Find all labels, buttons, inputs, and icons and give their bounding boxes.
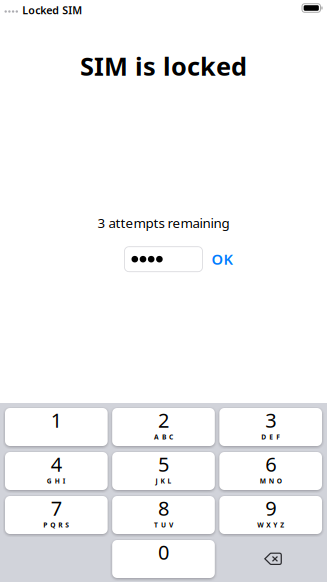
staticText: W X Y Z (257, 521, 284, 529)
button[interactable]: 8 (112, 496, 215, 534)
button[interactable]: 9 (219, 496, 322, 534)
staticText: Locked SIM (22, 3, 82, 17)
staticText: 2 (158, 407, 169, 433)
staticText: 0 (158, 539, 169, 565)
staticText: OK (211, 249, 232, 269)
staticText: G H I (47, 477, 66, 485)
button[interactable]: 5 (112, 452, 215, 490)
staticText: P Q R S (43, 521, 69, 529)
staticText: 1 (51, 407, 62, 433)
staticText: 5 (158, 451, 169, 477)
button[interactable]: 0 (112, 540, 215, 578)
staticText: 3 attempts remaining (97, 214, 229, 232)
staticText: 8 (158, 495, 169, 521)
staticText: T U V (154, 521, 173, 529)
button[interactable]: 2 (112, 408, 215, 446)
button[interactable]: 6 (219, 452, 322, 490)
button[interactable]: 7 (5, 496, 108, 534)
staticText: J K L (155, 477, 171, 485)
staticText: 9 (265, 495, 276, 521)
staticText: M N O (260, 477, 282, 485)
button[interactable]: 1 (5, 408, 108, 446)
button[interactable]: OK (202, 247, 232, 272)
staticText: SIM is locked (80, 49, 247, 83)
button[interactable]: 3 (219, 408, 322, 446)
staticText: 4 (51, 451, 62, 477)
staticText: 3 (265, 407, 276, 433)
staticText: D E F (261, 433, 280, 441)
button[interactable]: 4 (5, 452, 108, 490)
staticText: A B C (154, 433, 173, 441)
button[interactable]: Delete (219, 540, 322, 578)
staticText: 7 (51, 495, 62, 521)
staticText: 6 (265, 451, 276, 477)
